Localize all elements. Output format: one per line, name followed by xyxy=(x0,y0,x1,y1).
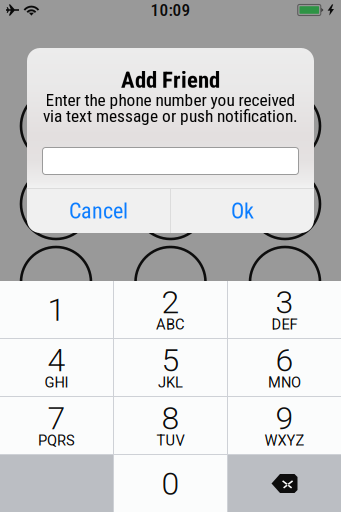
staticText: 10:09 xyxy=(150,0,190,20)
staticText: WXYZ xyxy=(264,432,304,449)
staticText: ABC xyxy=(156,316,185,333)
button[interactable]: 4 xyxy=(0,339,113,396)
staticText: PQRS xyxy=(38,432,75,449)
button[interactable]: 0 xyxy=(114,455,227,512)
staticText: 5 xyxy=(161,342,179,379)
button[interactable]: Ok xyxy=(171,189,314,233)
button[interactable]: Delete xyxy=(228,455,341,512)
staticText: Enter the phone number you received xyxy=(45,90,295,110)
button[interactable]: 5 xyxy=(114,339,227,396)
staticText: 1 xyxy=(47,291,65,329)
button[interactable]: 8 xyxy=(114,397,227,454)
staticText: 3 xyxy=(275,284,293,321)
staticText: Ok xyxy=(231,198,254,224)
button[interactable]: 9 xyxy=(228,397,341,454)
button[interactable]: 6 xyxy=(228,339,341,396)
staticText: MNO xyxy=(268,374,301,391)
staticText: 2 xyxy=(161,284,179,321)
staticText: 7 xyxy=(47,400,65,437)
button[interactable]: 7 xyxy=(0,397,113,454)
staticText: Cancel xyxy=(69,198,128,224)
staticText: 0 xyxy=(161,465,179,503)
staticText: 8 xyxy=(161,400,179,437)
button[interactable]: 2 xyxy=(114,281,227,338)
staticText: JKL xyxy=(158,374,183,391)
staticText: 4 xyxy=(47,342,65,379)
button[interactable]: 1 xyxy=(0,281,113,338)
button[interactable]: 3 xyxy=(228,281,341,338)
staticText: GHI xyxy=(44,374,68,391)
staticText: via text message or push notification. xyxy=(43,106,298,126)
staticText: 9 xyxy=(275,400,293,437)
staticText: TUV xyxy=(156,432,184,449)
staticText: Add Friend xyxy=(121,67,220,93)
staticText: 6 xyxy=(275,342,293,379)
staticText: DEF xyxy=(271,316,297,333)
button[interactable]: Cancel xyxy=(27,189,170,233)
